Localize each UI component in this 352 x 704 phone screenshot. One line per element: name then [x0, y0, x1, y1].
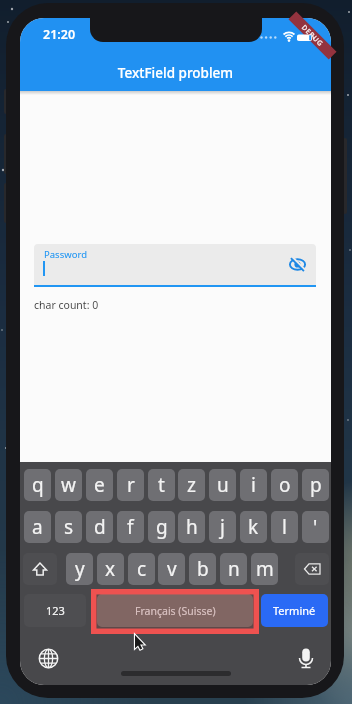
- button[interactable]: y: [66, 553, 93, 585]
- button[interactable]: [288, 255, 307, 274]
- button[interactable]: a: [24, 511, 51, 543]
- staticText: e: [94, 472, 105, 498]
- button[interactable]: c: [128, 553, 155, 585]
- staticText: a: [32, 514, 43, 540]
- button[interactable]: i: [240, 469, 267, 501]
- staticText: Password: [44, 248, 87, 261]
- button[interactable]: p: [302, 469, 329, 501]
- staticText: p: [310, 472, 322, 498]
- staticText: m: [256, 556, 274, 582]
- button[interactable]: k: [240, 511, 267, 543]
- button[interactable]: w: [55, 469, 82, 501]
- button[interactable]: [295, 553, 329, 585]
- button[interactable]: d: [86, 511, 113, 543]
- button[interactable]: Français (Suisse): [97, 594, 253, 627]
- button[interactable]: ': [302, 511, 329, 543]
- staticText: char count: 0: [34, 298, 99, 312]
- button[interactable]: e: [86, 469, 113, 501]
- button[interactable]: f: [117, 511, 144, 543]
- button[interactable]: x: [97, 553, 124, 585]
- staticText: w: [61, 472, 76, 498]
- staticText: c: [137, 556, 147, 582]
- button[interactable]: z: [178, 469, 205, 501]
- staticText: i: [251, 472, 256, 498]
- staticText: b: [197, 556, 209, 582]
- staticText: DEBUG: [300, 23, 326, 49]
- staticText: j: [220, 514, 225, 540]
- staticText: t: [158, 472, 165, 498]
- button[interactable]: r: [117, 469, 144, 501]
- button[interactable]: v: [158, 553, 185, 585]
- button[interactable]: b: [189, 553, 216, 585]
- staticText: k: [248, 514, 259, 540]
- staticText: u: [217, 472, 229, 498]
- staticText: g: [156, 514, 168, 540]
- button[interactable]: s: [55, 511, 82, 543]
- staticText: y: [75, 556, 85, 582]
- staticText: z: [187, 472, 196, 498]
- staticText: Français (Suisse): [135, 604, 216, 618]
- staticText: s: [64, 514, 74, 540]
- button[interactable]: 123: [24, 594, 86, 627]
- button[interactable]: j: [209, 511, 236, 543]
- button[interactable]: h: [178, 511, 205, 543]
- staticText: q: [32, 472, 44, 498]
- staticText: v: [167, 556, 177, 582]
- staticText: 21:20: [43, 26, 76, 43]
- staticText: o: [279, 472, 291, 498]
- button[interactable]: [23, 553, 57, 585]
- staticText: l: [282, 514, 287, 540]
- staticText: TextField problem: [20, 64, 331, 82]
- button[interactable]: t: [148, 469, 175, 501]
- button[interactable]: n: [220, 553, 247, 585]
- button[interactable]: l: [271, 511, 298, 543]
- staticText: n: [228, 556, 240, 582]
- button[interactable]: m: [251, 553, 278, 585]
- button[interactable]: [296, 647, 316, 670]
- staticText: h: [186, 514, 198, 540]
- staticText: 123: [46, 603, 65, 618]
- staticText: x: [105, 556, 116, 582]
- staticText: f: [127, 514, 134, 540]
- staticText: d: [94, 514, 106, 540]
- button[interactable]: [38, 648, 59, 669]
- button[interactable]: Password: [34, 244, 316, 285]
- button[interactable]: u: [209, 469, 236, 501]
- button[interactable]: o: [271, 469, 298, 501]
- staticText: ': [313, 514, 318, 540]
- button[interactable]: Terminé: [261, 594, 328, 627]
- staticText: r: [127, 472, 135, 498]
- button[interactable]: q: [24, 469, 51, 501]
- staticText: Terminé: [273, 603, 316, 618]
- button[interactable]: g: [148, 511, 175, 543]
